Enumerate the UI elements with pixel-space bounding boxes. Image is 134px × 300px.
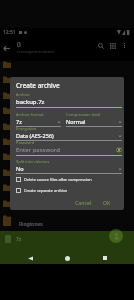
staticText: Archive format [16, 112, 44, 117]
staticText: 7z [16, 118, 57, 125]
staticText: Create archive [16, 81, 60, 90]
staticText: Compression level [66, 112, 101, 117]
button[interactable]: Split into volumes [16, 159, 122, 174]
staticText: 0 [17, 40, 21, 49]
staticText: Create separate archive [24, 188, 68, 193]
button[interactable]: Archive [16, 92, 122, 108]
button[interactable]: Grid view [107, 40, 118, 51]
staticText: Split into volumes [16, 159, 50, 164]
staticText: Data (AES-256) [16, 132, 118, 139]
staticText: backup.7z [16, 98, 122, 106]
staticText: Ringtones [19, 221, 43, 228]
staticText: Delete source files after compression [24, 177, 92, 182]
staticText: No [16, 165, 118, 172]
staticText: /storage/emulated [17, 49, 54, 55]
button[interactable]: Archive format [16, 112, 61, 127]
staticText: Normal [66, 118, 118, 125]
button[interactable]: Cancel [71, 197, 96, 208]
button[interactable]: Encryption [16, 126, 122, 141]
button[interactable]: Back [22, 250, 38, 266]
staticText: 7z [16, 236, 22, 243]
staticText: OK [103, 199, 111, 206]
button[interactable]: Compression level [66, 112, 122, 127]
button[interactable]: Search [95, 40, 106, 51]
button[interactable]: Recents [97, 250, 113, 266]
button[interactable]: Back [0, 42, 12, 54]
button[interactable]: Add [109, 229, 123, 243]
staticText: Cancel [75, 199, 92, 206]
staticText: 12:51 [3, 29, 16, 36]
button[interactable]: Create separate archive [16, 188, 124, 193]
staticText: Encryption [16, 126, 37, 131]
staticText: Archive [16, 92, 30, 97]
button[interactable]: Password [16, 140, 122, 156]
button[interactable]: Delete source files after compression [16, 177, 124, 182]
staticText: Enter password [16, 146, 116, 154]
button[interactable]: OK [99, 197, 115, 208]
button[interactable]: More options [119, 40, 130, 51]
staticText: Password [16, 140, 35, 145]
button[interactable]: Home [59, 250, 75, 266]
